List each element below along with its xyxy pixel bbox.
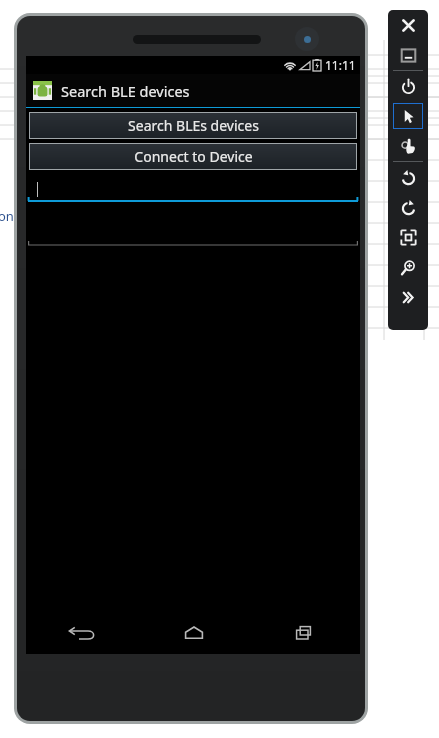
button[interactable]: Back bbox=[26, 612, 138, 654]
button[interactable]: More bbox=[393, 284, 423, 310]
staticText: Search BLE devices bbox=[61, 81, 190, 101]
button[interactable] bbox=[28, 224, 358, 246]
staticText: 11:11 bbox=[325, 57, 356, 73]
button[interactable]: Fullscreen bbox=[393, 224, 423, 250]
staticText: Connect to Device bbox=[134, 147, 253, 166]
button[interactable]: Zoom bbox=[393, 254, 423, 280]
button[interactable]: Screenshot bbox=[393, 42, 423, 68]
button[interactable]: Rotate left bbox=[393, 164, 423, 190]
button[interactable]: Multitouch bbox=[393, 133, 423, 159]
button[interactable]: Pointer bbox=[393, 103, 423, 129]
staticText: Search BLEs devices bbox=[128, 116, 259, 135]
button[interactable]: Close bbox=[393, 12, 423, 38]
button[interactable] bbox=[28, 180, 358, 202]
button[interactable]: Power bbox=[393, 73, 423, 99]
staticText: on bbox=[0, 207, 14, 225]
button[interactable]: Rotate right bbox=[393, 194, 423, 220]
button[interactable]: Search BLEs devices bbox=[29, 112, 357, 139]
button[interactable]: Recents bbox=[249, 612, 360, 654]
button[interactable]: Home bbox=[138, 612, 249, 654]
button[interactable]: Connect to Device bbox=[29, 143, 357, 170]
